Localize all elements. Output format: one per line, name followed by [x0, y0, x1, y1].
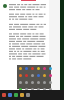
- button[interactable]: Taskbar item: [8, 93, 12, 97]
- button[interactable]: Taskbar item: [20, 93, 24, 97]
- button[interactable]: Profile avatar: [3, 4, 7, 8]
- button[interactable]: Taskbar item: [26, 93, 30, 97]
- button[interactable]: Emoji picker: [17, 65, 51, 89]
- button[interactable]: Taskbar item: [2, 93, 6, 97]
- button[interactable]: Taskbar item: [14, 93, 18, 97]
